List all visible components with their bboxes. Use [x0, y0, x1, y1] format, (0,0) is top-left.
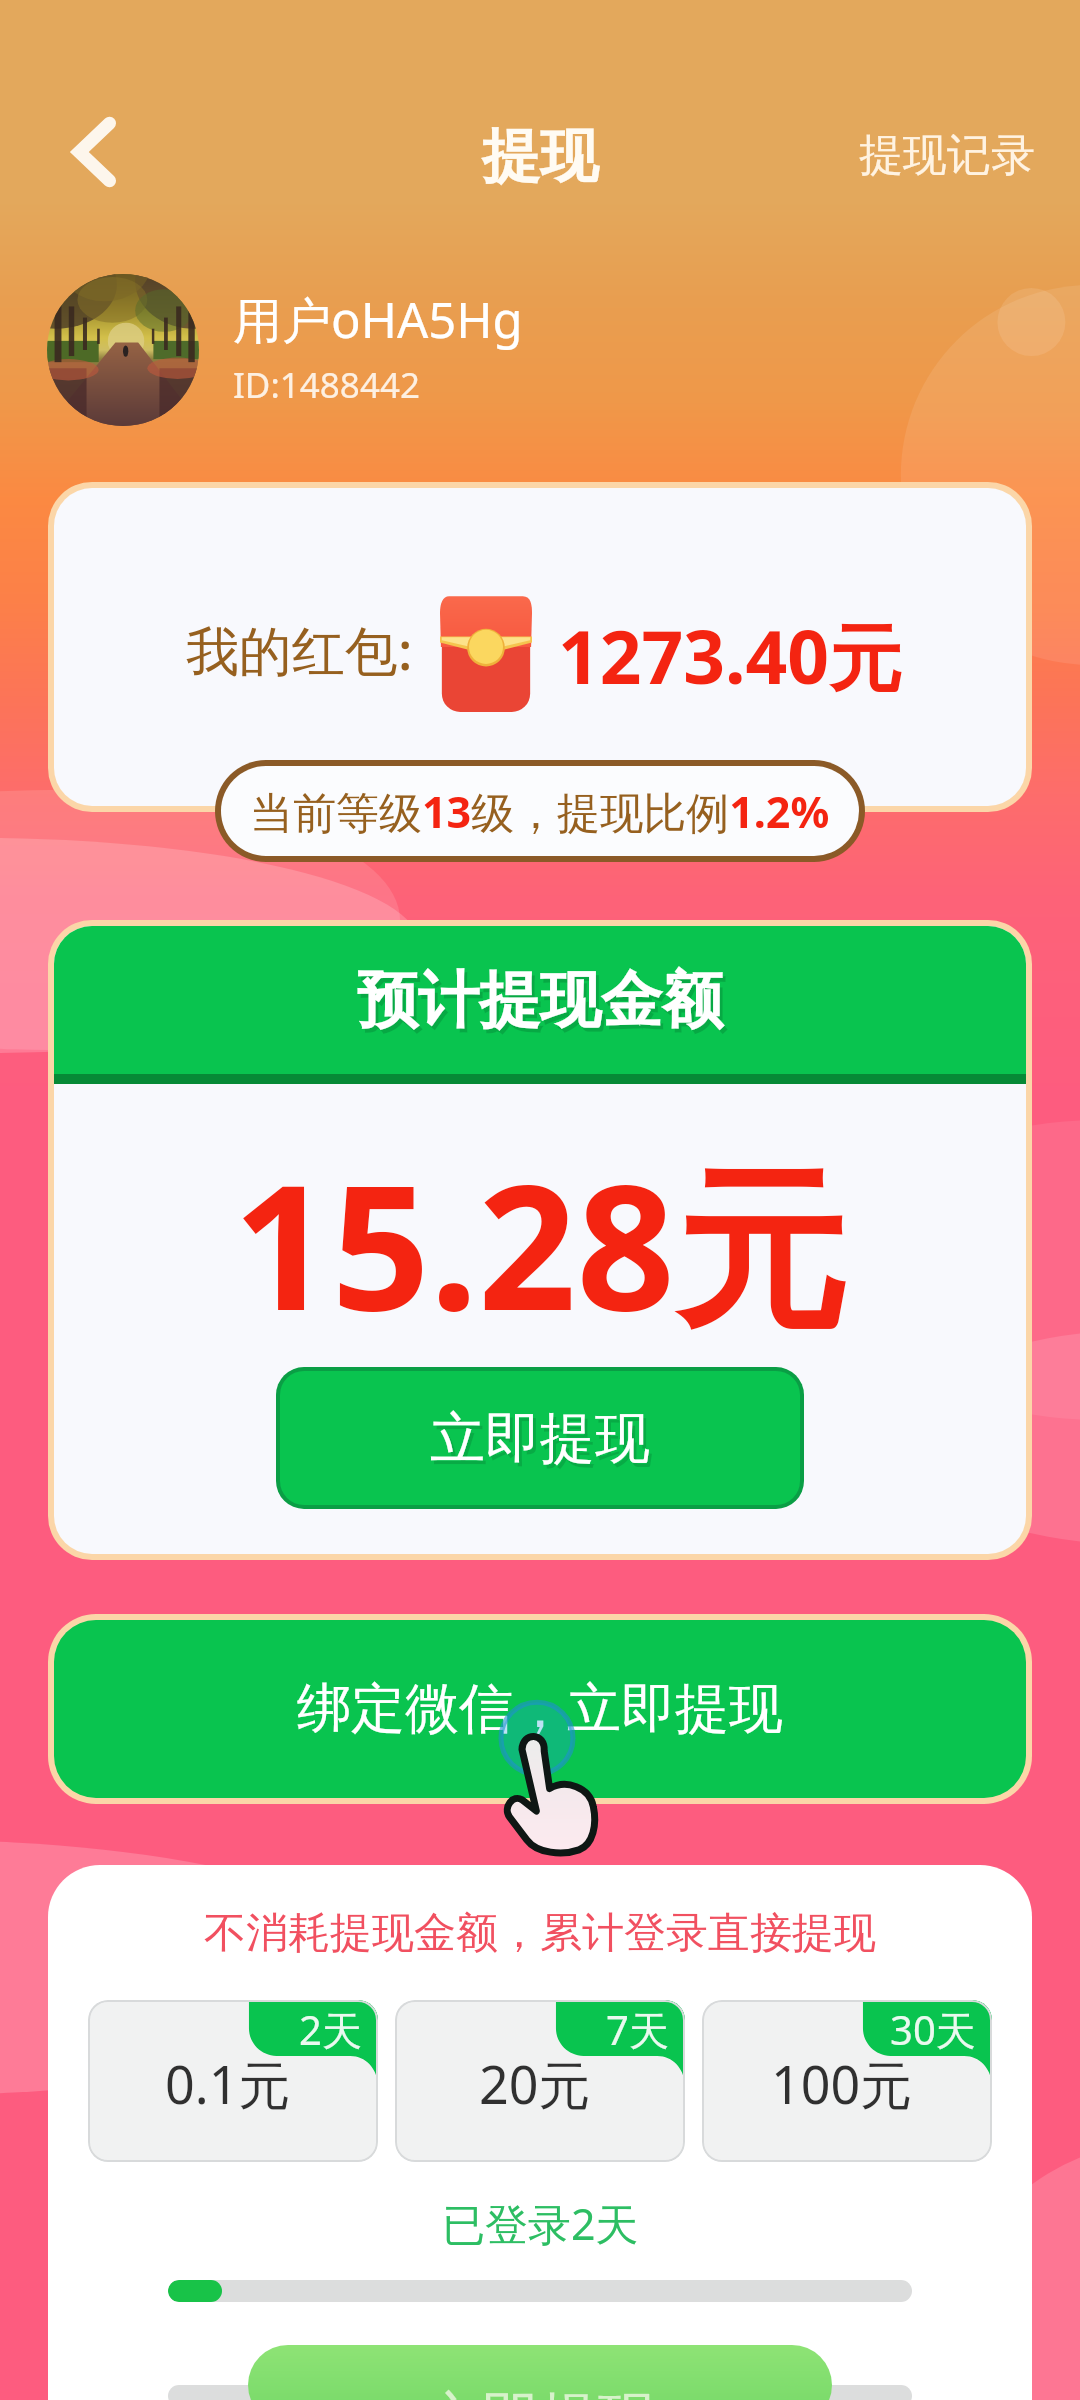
button[interactable]: 7天	[395, 2000, 685, 2162]
button[interactable]: 绑定微信，立即提现	[54, 1620, 1026, 1798]
staticText: ID:1488442	[233, 361, 420, 409]
staticText: 预计提现金额	[360, 966, 726, 1043]
button[interactable]: 立即提现	[280, 1371, 800, 1505]
staticText: 立即提现	[430, 1404, 650, 1473]
staticText: 立即提现	[424, 2383, 656, 2400]
staticText: 7天	[606, 2002, 669, 2057]
staticText: 1273.40元	[558, 606, 903, 706]
button[interactable]: Back	[62, 116, 134, 188]
staticText: 100元	[771, 2048, 913, 2119]
staticText: 30天	[890, 2002, 976, 2057]
staticText: 不消耗提现金额，累计登录直接提现	[204, 1907, 876, 1960]
staticText: 20元	[479, 2048, 591, 2119]
staticText: 预计提现金额	[357, 962, 723, 1039]
staticText: 2天	[299, 2002, 362, 2057]
button[interactable]: 2天	[88, 2000, 378, 2162]
button[interactable]: 提现记录	[839, 120, 1080, 191]
staticText: 提现	[482, 120, 598, 193]
staticText: 当前等级13级，提现比例1.2%	[250, 782, 830, 841]
staticText: 立即提现	[433, 1408, 653, 1477]
staticText: 提现记录	[859, 128, 1035, 183]
staticText: 0.1元	[165, 2048, 291, 2119]
staticText: 15.28元	[233, 1126, 847, 1361]
staticText: 用户oHA5Hg	[233, 286, 523, 353]
button[interactable]: 立即提现	[248, 2345, 832, 2400]
staticText: 已登录2天	[442, 2194, 639, 2253]
staticText: 我的红包:	[186, 613, 413, 685]
staticText: 绑定微信，立即提现	[297, 1675, 783, 1743]
button[interactable]: 30天	[702, 2000, 992, 2162]
